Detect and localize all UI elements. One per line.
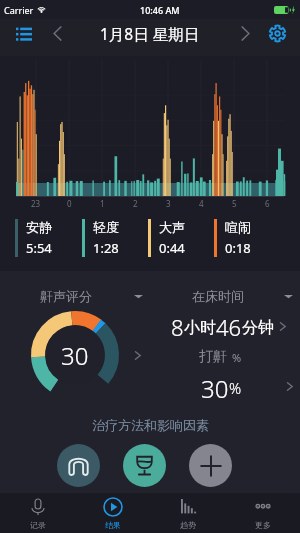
staticText: 5:54 — [26, 239, 52, 257]
button[interactable]: 喧闹 — [214, 219, 280, 257]
staticText: 分钟 — [242, 318, 274, 338]
staticText: 更多 — [255, 520, 271, 530]
button[interactable]: 鼾声评分 — [40, 285, 143, 307]
staticText: 大声 — [159, 219, 185, 235]
button[interactable]: 8 — [171, 313, 288, 339]
staticText: 0:44 — [159, 239, 185, 257]
button[interactable]: Settings — [262, 20, 292, 47]
button[interactable]: Alcohol — [123, 444, 166, 487]
staticText: 23 — [31, 198, 41, 209]
button[interactable]: 趋势 — [150, 493, 225, 533]
staticText: 5 — [232, 198, 237, 209]
button[interactable]: 结果 — [75, 493, 150, 533]
staticText: 趋势 — [180, 520, 196, 530]
button[interactable]: 更多 — [225, 493, 300, 533]
staticText: 记录 — [30, 520, 46, 530]
staticText: 1月8日 星期日 — [100, 23, 200, 44]
staticText: 鼾声评分 — [40, 288, 92, 304]
button[interactable]: 安静 — [15, 219, 82, 257]
staticText: 2 — [133, 198, 138, 209]
staticText: 治疗方法和影响因素 — [92, 417, 209, 433]
staticText: 3 — [166, 198, 171, 209]
staticText: 打鼾 — [199, 348, 227, 366]
staticText: 30 — [61, 339, 89, 372]
staticText: 0 — [67, 198, 72, 209]
button[interactable]: Add factor — [189, 444, 232, 487]
staticText: % — [229, 378, 242, 398]
staticText: 6 — [265, 198, 270, 209]
button[interactable]: 30 — [1, 309, 148, 401]
button[interactable]: 轻度 — [82, 219, 148, 257]
button[interactable]: 大声 — [148, 219, 214, 257]
button[interactable]: Mouthpiece — [57, 444, 100, 487]
staticText: 4 — [199, 198, 204, 209]
staticText: 喧闹 — [225, 219, 251, 235]
staticText: 1:28 — [93, 239, 119, 257]
button[interactable]: Menu — [6, 20, 42, 47]
staticText: 46 — [216, 312, 242, 338]
staticText: 结果 — [105, 520, 121, 530]
staticText: 安静 — [26, 219, 52, 235]
staticText: 在床时间 — [192, 288, 244, 304]
button[interactable]: 记录 — [0, 493, 75, 533]
staticText: Carrier — [4, 4, 34, 16]
button[interactable]: 在床时间 — [192, 285, 293, 307]
button[interactable]: Next day — [230, 20, 260, 47]
staticText: 30 — [201, 372, 229, 398]
staticText: % — [232, 350, 242, 365]
staticText: 10:46 AM — [140, 4, 180, 16]
staticText: 8 — [171, 312, 184, 338]
staticText: 1 — [100, 198, 105, 209]
button[interactable]: 30 — [201, 373, 300, 399]
staticText: 轻度 — [93, 219, 119, 235]
button[interactable]: Previous day — [42, 20, 72, 47]
staticText: 小时 — [184, 318, 216, 338]
staticText: 0:18 — [225, 239, 251, 257]
